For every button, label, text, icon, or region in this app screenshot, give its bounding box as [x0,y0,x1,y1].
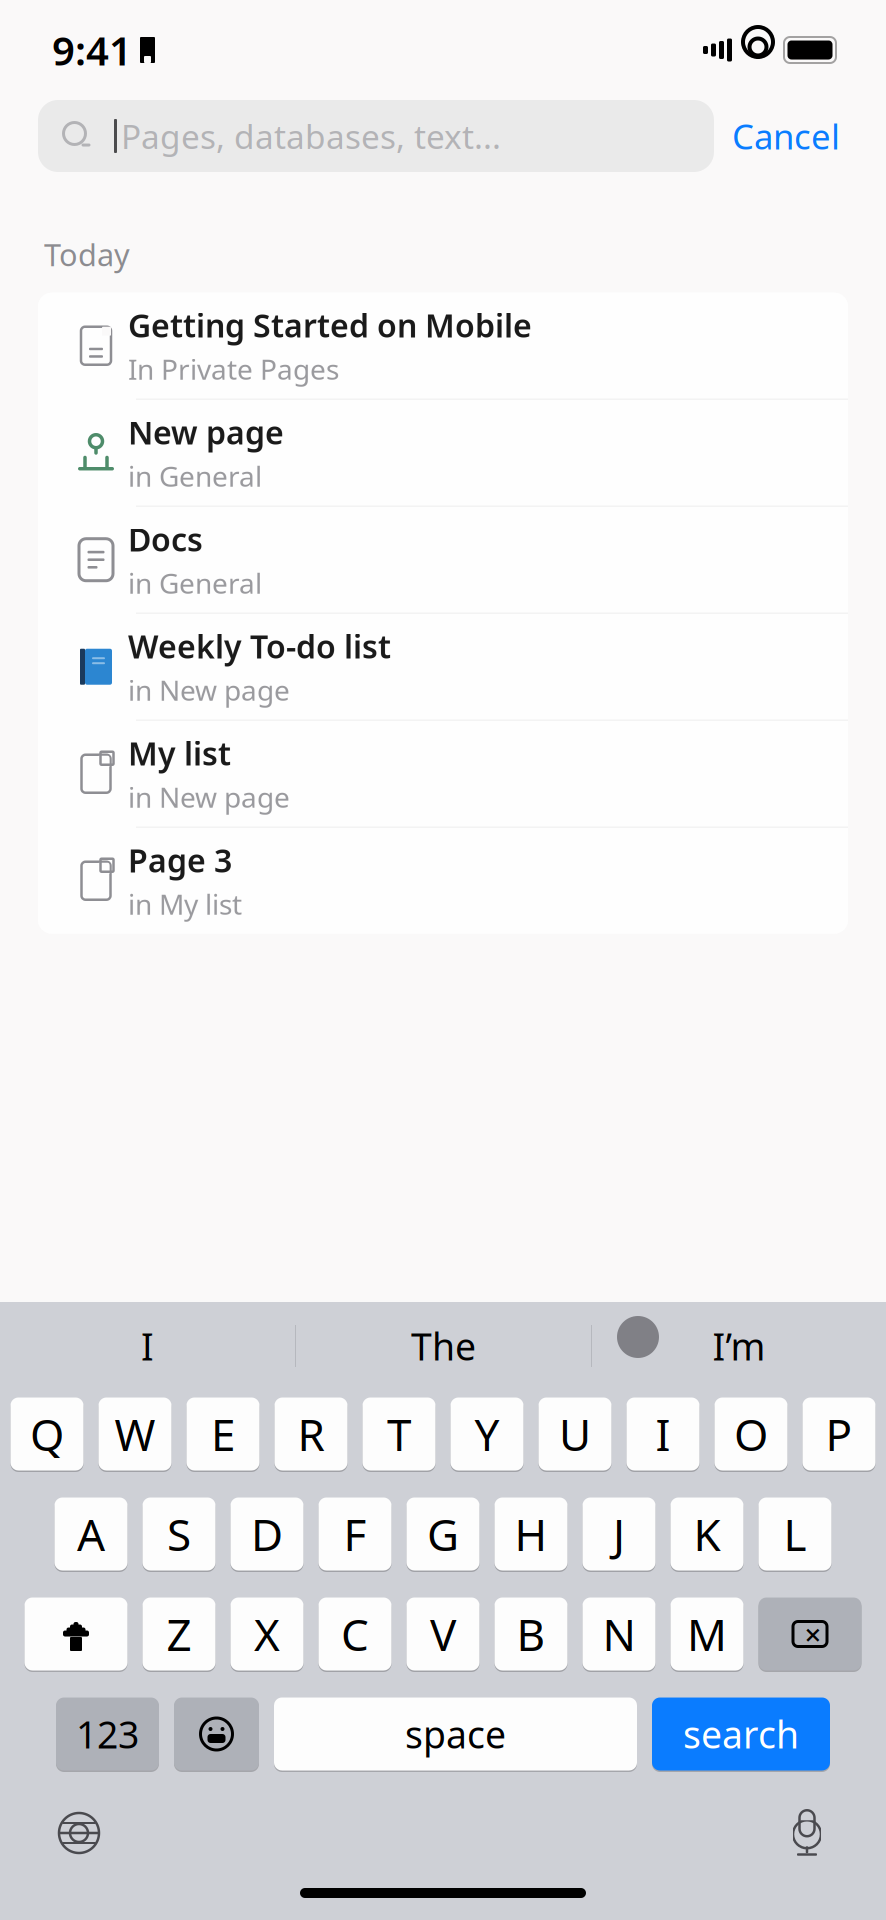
staticText: The [411,1321,476,1371]
staticText: P [825,1405,852,1463]
button[interactable]: C [318,1596,391,1672]
button[interactable]: W [98,1396,171,1472]
staticText: I [141,1321,154,1371]
staticText: S [167,1505,191,1563]
button[interactable]: I [0,1302,295,1390]
staticText: In Private Pages [128,350,339,388]
staticText: W [114,1405,155,1463]
staticText: U [559,1405,591,1463]
button[interactable]: P [802,1396,875,1472]
button[interactable]: Shift [24,1596,127,1672]
staticText: 9:41 [52,23,132,76]
button[interactable]: Dictate [784,1808,830,1858]
button[interactable]: Search [652,1696,830,1772]
staticText: M [687,1605,727,1663]
button[interactable]: Numbers [56,1696,159,1772]
staticText: New page [128,411,284,453]
button[interactable]: X [230,1596,303,1672]
button[interactable]: R [274,1396,347,1472]
button[interactable]: H [494,1496,567,1572]
staticText: 123 [76,1709,139,1759]
button[interactable]: I’m [592,1302,886,1390]
button[interactable]: B [494,1596,567,1672]
button[interactable]: I [626,1396,699,1472]
staticText: in My list [128,885,242,923]
staticText: I’m [712,1321,765,1371]
button[interactable]: O [714,1396,787,1472]
staticText: D [251,1505,283,1563]
button[interactable]: G [406,1496,479,1572]
staticText: C [341,1605,369,1663]
staticText: in General [128,564,262,602]
staticText: Q [30,1405,64,1463]
button[interactable]: Delete [758,1596,861,1672]
button[interactable]: Pages, databases, text... [38,100,714,172]
staticText: F [343,1505,366,1563]
button[interactable]: A [54,1496,127,1572]
staticText: Y [474,1405,499,1463]
staticText: X [254,1605,280,1663]
staticText: My list [128,732,231,774]
staticText: N [602,1605,635,1663]
staticText: Today [44,234,130,275]
staticText: search [683,1709,799,1759]
staticText: Cancel [732,113,840,159]
button[interactable]: New page [38,400,848,507]
staticText: Docs [128,518,203,560]
staticText: J [613,1505,625,1563]
button[interactable]: J [582,1496,655,1572]
button[interactable]: Getting Started on Mobile [38,293,848,400]
staticText: in New page [128,778,290,816]
staticText: Weekly To-do list [128,625,391,667]
button[interactable]: Space [274,1696,637,1772]
button[interactable]: Weekly To-do list [38,614,848,721]
button[interactable]: M [670,1596,743,1672]
staticText: in General [128,457,262,495]
staticText: I [655,1405,670,1463]
button[interactable]: The [296,1302,591,1390]
staticText: B [516,1605,545,1663]
button[interactable]: E [186,1396,259,1472]
button[interactable]: D [230,1496,303,1572]
button[interactable]: T [362,1396,435,1472]
button[interactable]: My list [38,721,848,828]
staticText: A [77,1505,105,1563]
staticText: Page 3 [128,839,232,881]
button[interactable]: Z [142,1596,215,1672]
staticText: space [405,1709,506,1759]
staticText: H [514,1505,547,1563]
button[interactable]: K [670,1496,743,1572]
staticText: R [297,1405,324,1463]
staticText: Getting Started on Mobile [128,304,532,346]
button[interactable]: Docs [38,507,848,614]
button[interactable]: Y [450,1396,523,1472]
button[interactable]: Q [10,1396,83,1472]
staticText: K [693,1505,720,1563]
staticText: E [211,1405,235,1463]
button[interactable]: N [582,1596,655,1672]
button[interactable]: V [406,1596,479,1672]
button[interactable]: Emoji [174,1696,259,1772]
staticText: Z [166,1605,191,1663]
button[interactable]: U [538,1396,611,1472]
button[interactable]: F [318,1496,391,1572]
staticText: in New page [128,671,290,709]
staticText: L [783,1505,806,1563]
staticText: V [430,1605,456,1663]
button[interactable]: Page 3 [38,828,848,934]
staticText: Pages, databases, text... [121,114,501,158]
staticText: G [427,1505,459,1563]
button[interactable]: L [758,1496,831,1572]
staticText: T [387,1405,411,1463]
button[interactable]: Switch keyboard [56,1810,102,1856]
button[interactable]: Cancel [714,100,858,172]
staticText: O [734,1405,768,1463]
button[interactable]: S [142,1496,215,1572]
staticText: × [804,1614,821,1653]
